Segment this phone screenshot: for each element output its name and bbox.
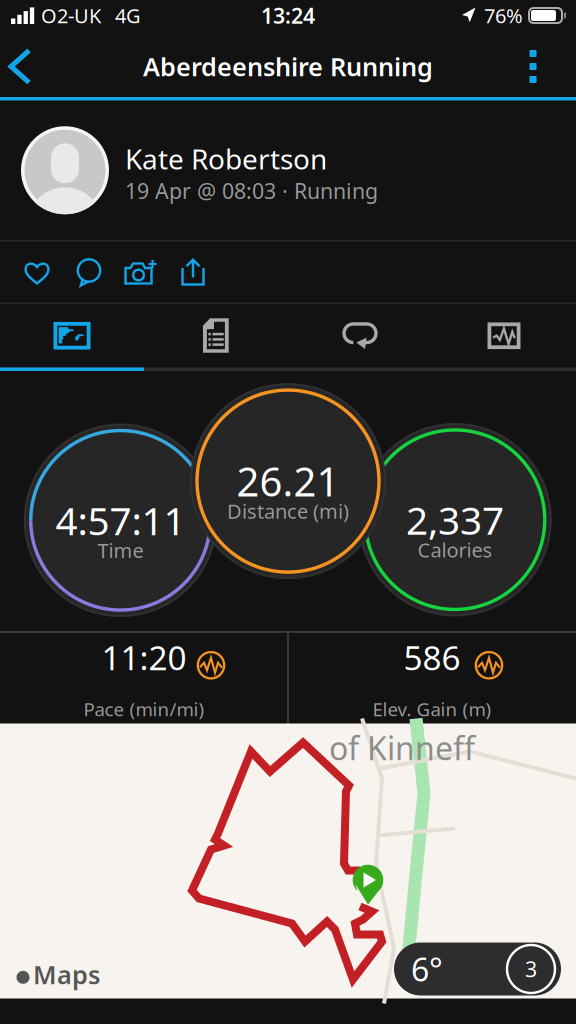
staticText: 19 Apr @ 08:03 · Running bbox=[125, 177, 378, 205]
button[interactable]: More options bbox=[511, 46, 555, 86]
button[interactable]: Comment bbox=[63, 241, 115, 302]
staticText: 4G bbox=[115, 2, 141, 29]
staticText: Time bbox=[97, 537, 143, 564]
button[interactable]: Like bbox=[11, 241, 63, 302]
button[interactable]: Charts bbox=[432, 304, 576, 367]
staticText: 4:57:11 bbox=[55, 495, 185, 546]
staticText: Elev. Gain (m) bbox=[372, 696, 491, 721]
staticText: 76% bbox=[484, 2, 523, 29]
staticText: Pace (min/mi) bbox=[83, 696, 204, 721]
staticText: Aberdeenshire Running bbox=[143, 50, 433, 83]
staticText: 6° bbox=[411, 948, 443, 990]
staticText: 3 bbox=[525, 955, 537, 983]
staticText: Kate Robertson bbox=[125, 140, 327, 177]
button[interactable]: Splits bbox=[144, 304, 288, 367]
button[interactable]: Map bbox=[0, 304, 144, 367]
button[interactable]: Laps bbox=[288, 304, 432, 367]
button[interactable]: Share bbox=[167, 241, 219, 302]
button[interactable]: Photos bbox=[115, 241, 167, 302]
staticText: 586 bbox=[403, 635, 460, 679]
staticText: Distance (mi) bbox=[227, 498, 349, 524]
staticText: of Kinneff bbox=[329, 726, 475, 769]
button[interactable]: Back bbox=[0, 46, 44, 86]
staticText: O2-UK bbox=[41, 2, 101, 29]
staticText: 11:20 bbox=[101, 635, 186, 679]
staticText: 2,337 bbox=[406, 494, 504, 545]
staticText: Calories bbox=[417, 536, 492, 563]
staticText: Maps bbox=[33, 957, 100, 991]
staticText: 13:24 bbox=[261, 1, 315, 30]
staticText: 26.21 bbox=[236, 454, 339, 508]
